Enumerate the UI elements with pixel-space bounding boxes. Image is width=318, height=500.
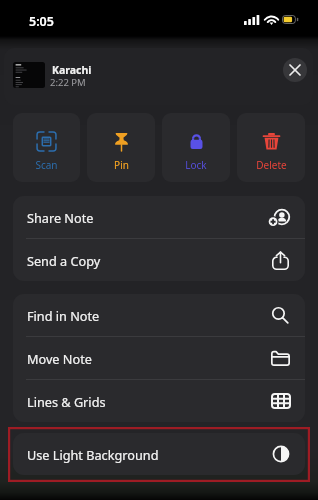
button[interactable]: Lock (162, 113, 230, 182)
staticText: Delete (256, 158, 287, 172)
button[interactable]: Use Light Background (13, 433, 305, 475)
staticText: Use Light Background (27, 446, 159, 463)
staticText: Lock (185, 158, 207, 172)
button[interactable]: Delete (237, 113, 305, 182)
staticText: Find in Note (27, 307, 100, 324)
button[interactable]: Close (283, 58, 307, 82)
button[interactable]: Share Note (13, 196, 305, 238)
staticText: 2:22 PM (50, 76, 86, 89)
staticText: Lines & Grids (27, 393, 106, 410)
button[interactable]: Karachi (4, 48, 313, 105)
staticText: 5:05 (29, 13, 54, 30)
button[interactable]: Find in Note (13, 294, 305, 336)
staticText: Send a Copy (27, 252, 101, 269)
button[interactable]: Pin (87, 113, 155, 182)
staticText: Share Note (27, 209, 94, 226)
button[interactable]: Scan (13, 113, 80, 182)
button[interactable]: Lines & Grids (13, 380, 305, 422)
staticText: Scan (35, 158, 58, 172)
staticText: Move Note (27, 350, 92, 367)
button[interactable]: Send a Copy (13, 239, 305, 281)
button[interactable]: Move Note (13, 337, 305, 379)
staticText: Pin (114, 158, 129, 172)
staticText: Karachi (52, 63, 92, 77)
